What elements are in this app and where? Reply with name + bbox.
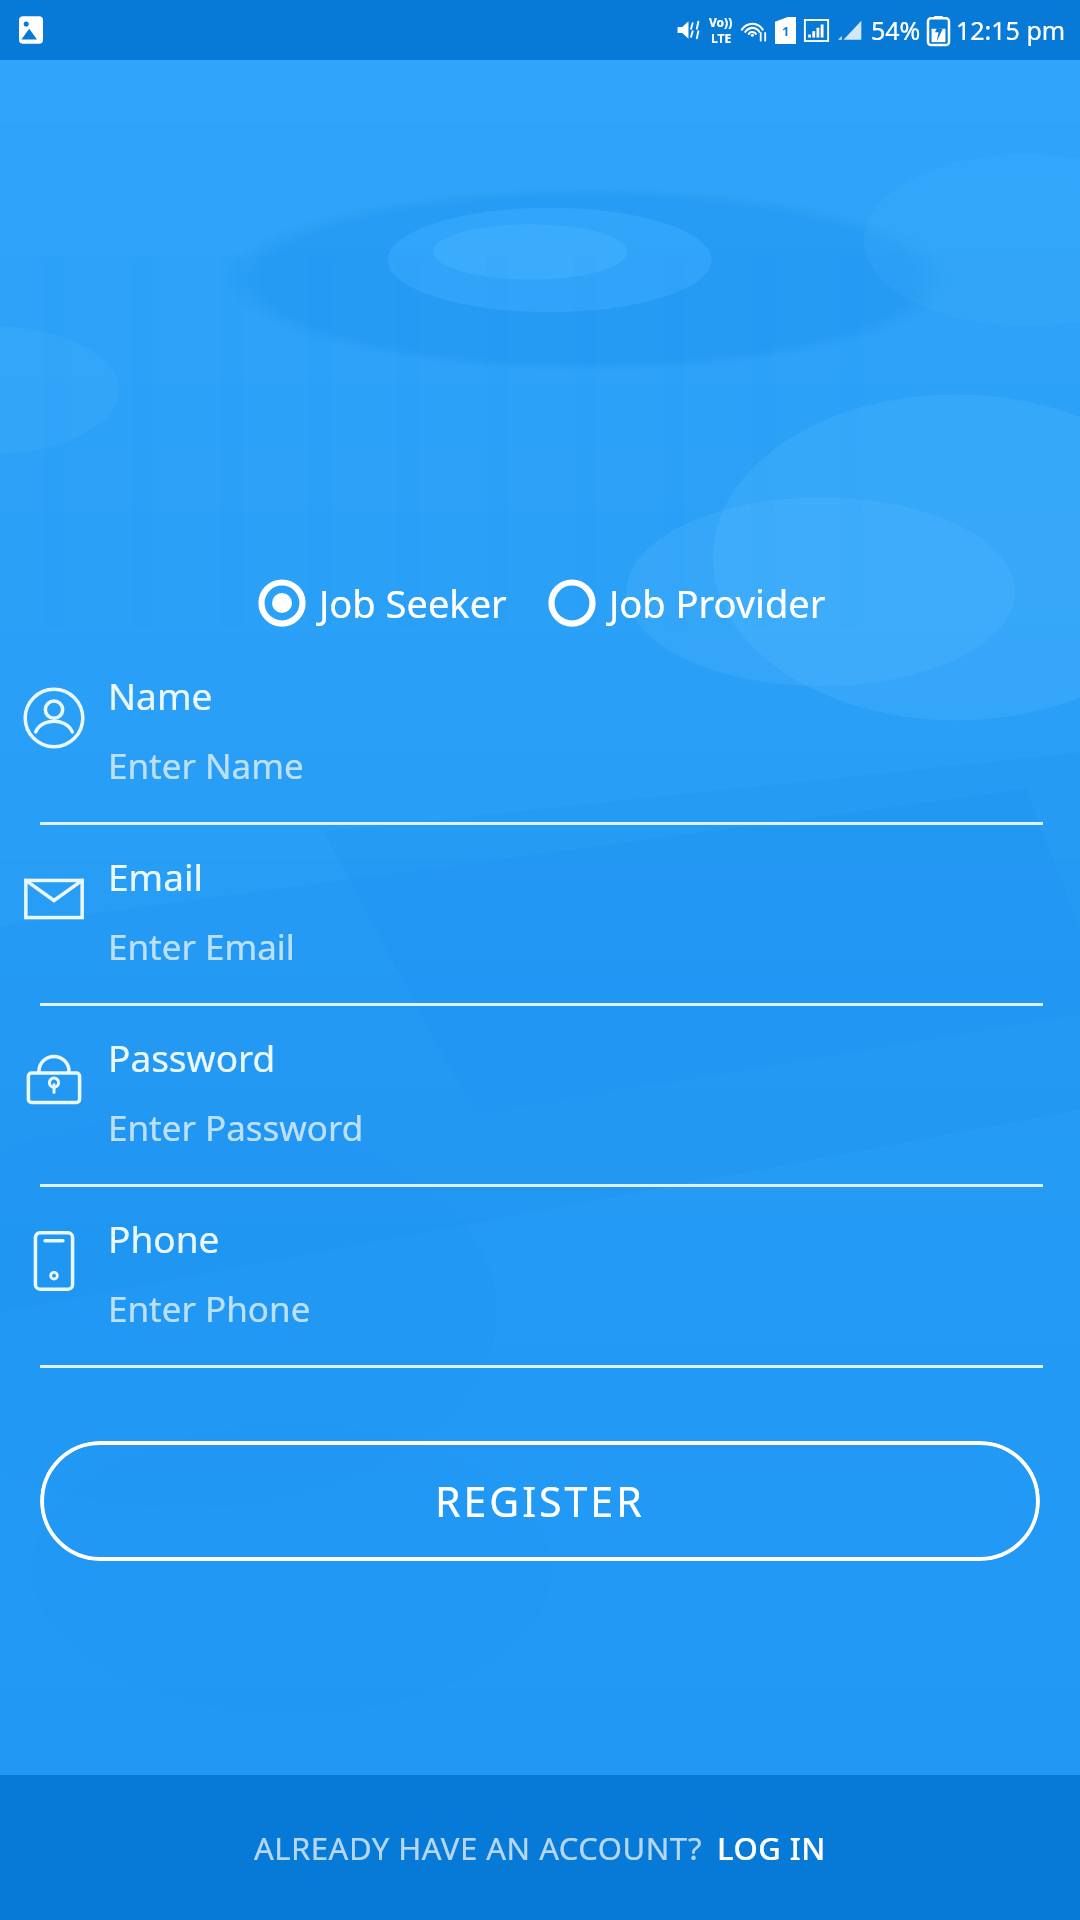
staticText: 12:15 pm: [956, 13, 1066, 47]
staticText: REGISTER: [435, 1473, 645, 1529]
other: Name: [0, 670, 108, 766]
button[interactable]: Password: [0, 1032, 1080, 1187]
other: Gallery: [16, 15, 46, 45]
staticText: Password: [108, 1032, 276, 1082]
button[interactable]: Name: [0, 670, 1080, 825]
other: Email: [0, 851, 108, 947]
staticText: LOG IN: [717, 1827, 826, 1869]
other: Password: [0, 1032, 108, 1128]
button[interactable]: Job Seeker: [251, 572, 511, 634]
staticText: Name: [108, 670, 213, 720]
staticText: LTE: [711, 30, 732, 46]
button[interactable]: Job Provider: [541, 572, 830, 634]
staticText: Vo)): [709, 14, 733, 30]
staticText: Email: [108, 851, 204, 901]
staticText: 1: [782, 22, 790, 40]
button[interactable]: ALREADY HAVE AN ACCOUNT?: [0, 1775, 1080, 1920]
staticText: Enter Name: [108, 742, 304, 790]
button[interactable]: REGISTER: [40, 1441, 1040, 1561]
staticText: Phone: [108, 1213, 220, 1263]
button[interactable]: Email: [0, 851, 1080, 1006]
other: Phone: [0, 1213, 108, 1309]
staticText: ALREADY HAVE AN ACCOUNT?: [254, 1827, 703, 1869]
staticText: Enter Phone: [108, 1285, 311, 1333]
button[interactable]: Phone: [0, 1213, 1080, 1368]
staticText: Enter Password: [108, 1104, 364, 1152]
staticText: Enter Email: [108, 923, 295, 971]
staticText: Job Seeker: [319, 577, 507, 629]
staticText: Job Provider: [609, 577, 826, 629]
staticText: 54%: [871, 13, 921, 47]
